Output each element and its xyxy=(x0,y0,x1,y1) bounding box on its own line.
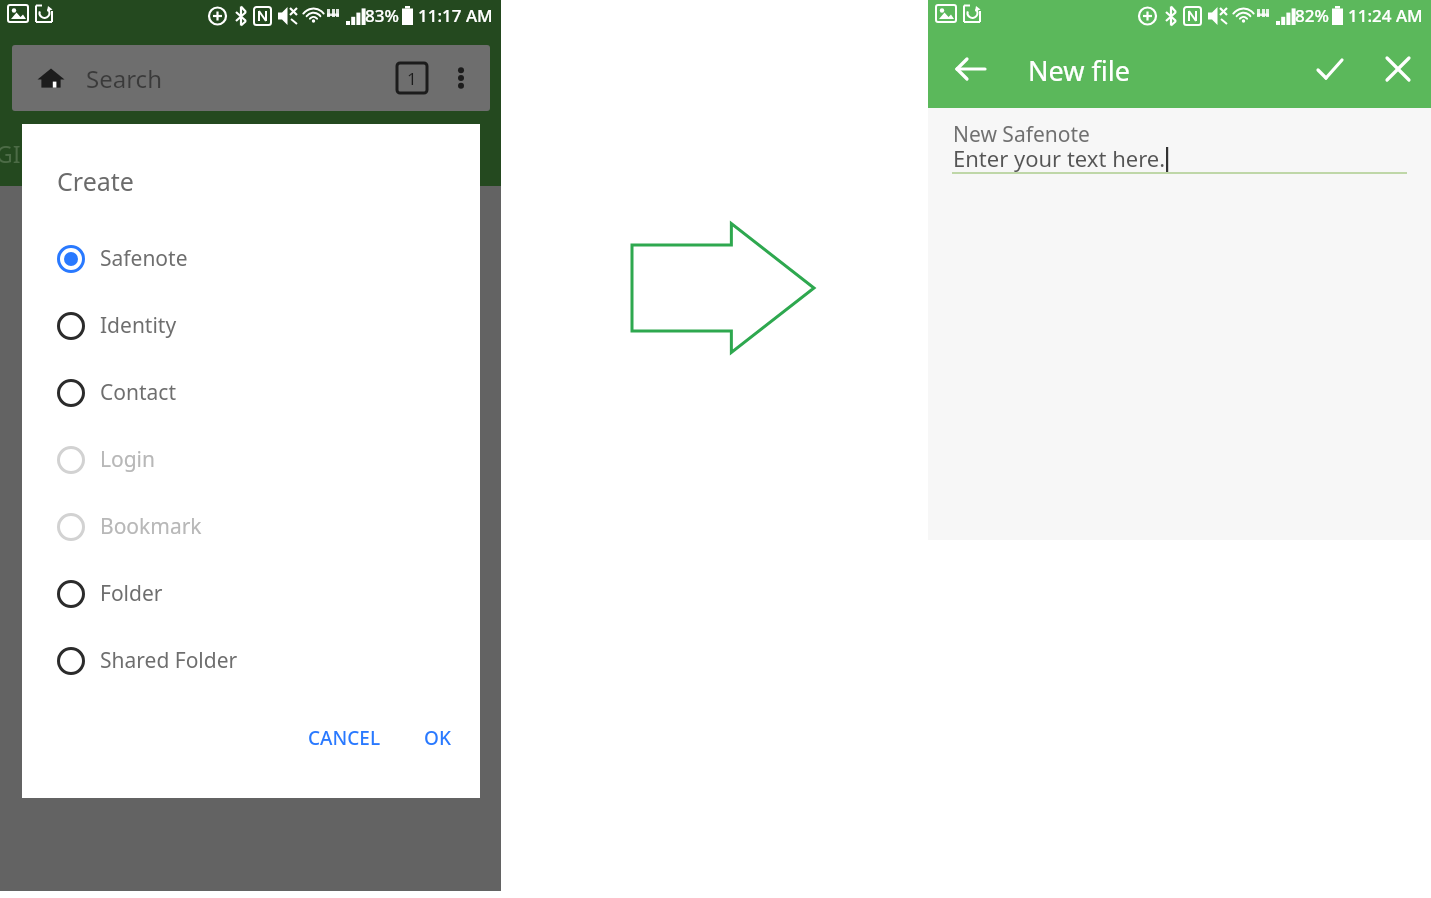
button[interactable]: Safenote xyxy=(22,225,480,292)
staticText: Folder xyxy=(100,579,163,608)
button[interactable]: CANCEL xyxy=(286,716,402,760)
staticText: 1 xyxy=(407,67,417,90)
button[interactable]: Bookmark xyxy=(22,493,480,560)
button[interactable]: Cancel xyxy=(1373,44,1423,94)
staticText: 11:17 AM xyxy=(418,4,493,27)
staticText: Search xyxy=(86,62,162,95)
staticText: GIN xyxy=(0,138,39,169)
button[interactable]: Shared Folder xyxy=(22,627,480,694)
staticText: New file xyxy=(1028,52,1130,89)
button[interactable]: Identity xyxy=(22,292,480,359)
staticText: New Safenote xyxy=(953,120,1090,149)
staticText: Safenote xyxy=(100,244,188,273)
button[interactable]: OK xyxy=(412,716,462,760)
other: Home xyxy=(36,63,66,93)
staticText: Create xyxy=(57,164,134,198)
staticText: Enter your text here. xyxy=(953,143,1166,173)
staticText: Bookmark xyxy=(100,512,202,541)
staticText: 11:24 AM xyxy=(1348,4,1423,27)
button[interactable]: Folder xyxy=(22,560,480,627)
staticText: Contact xyxy=(100,378,176,407)
button[interactable]: 1 xyxy=(396,62,428,94)
button[interactable]: Confirm xyxy=(1305,44,1355,94)
staticText: Login xyxy=(100,445,156,474)
staticText: OK xyxy=(424,725,451,751)
button[interactable]: Contact xyxy=(22,359,480,426)
button[interactable]: Login xyxy=(22,426,480,493)
staticText: 82% xyxy=(1295,4,1329,27)
button[interactable]: Home xyxy=(12,45,490,111)
staticText: Shared Folder xyxy=(100,646,238,675)
staticText: Identity xyxy=(100,311,177,340)
staticText: 83% xyxy=(365,4,399,27)
staticText: CANCEL xyxy=(308,725,381,751)
button[interactable]: Back xyxy=(946,44,996,94)
button[interactable]: More options xyxy=(444,61,478,95)
